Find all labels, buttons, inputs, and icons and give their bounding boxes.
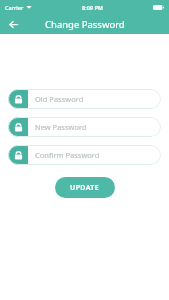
staticText: Carrier xyxy=(5,4,24,11)
button[interactable]: UPDATE xyxy=(55,177,115,198)
button[interactable]: New Password xyxy=(8,117,161,137)
staticText: Confirm Password xyxy=(35,150,100,160)
staticText: Change Password xyxy=(45,18,125,31)
button[interactable]: Old Password xyxy=(8,89,161,109)
staticText: 8:09 PM xyxy=(82,4,103,11)
button[interactable]: Confirm Password xyxy=(8,145,161,165)
staticText: UPDATE xyxy=(70,183,100,193)
staticText: Old Password xyxy=(35,94,84,104)
staticText: New Password xyxy=(35,122,87,132)
button[interactable]: Back xyxy=(5,16,21,32)
